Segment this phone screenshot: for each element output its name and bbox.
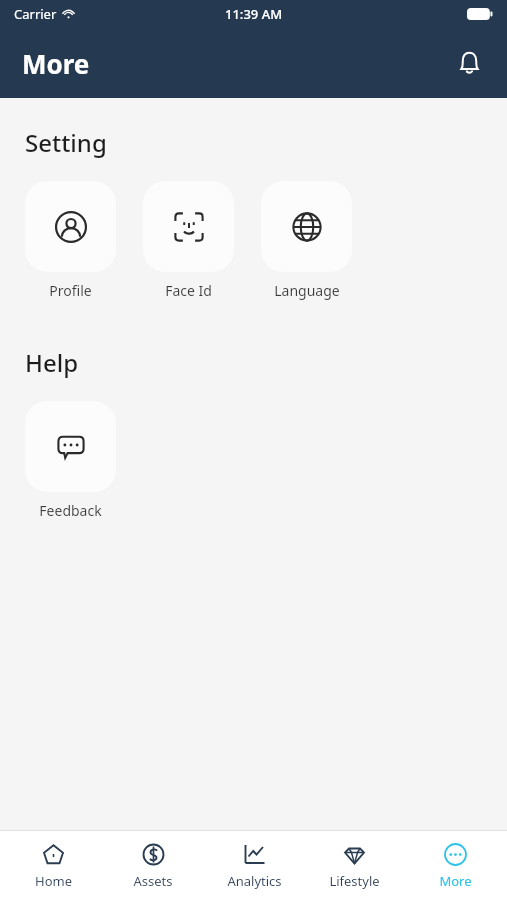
staticText: Setting [25, 126, 107, 159]
staticText: 11:39 AM [225, 5, 283, 23]
staticText: More [22, 46, 90, 81]
staticText: More [439, 872, 472, 890]
button[interactable]: Face Id [143, 181, 234, 300]
staticText: Lifestyle [329, 872, 380, 890]
staticText: Help [25, 346, 79, 379]
staticText: Language [274, 281, 340, 300]
staticText: Feedback [39, 501, 102, 520]
button[interactable]: Home [5, 836, 101, 896]
staticText: Profile [49, 281, 92, 300]
button[interactable]: Profile [25, 181, 116, 300]
button[interactable]: Notifications [445, 39, 493, 87]
button[interactable]: More [407, 836, 503, 896]
button[interactable]: Language [261, 181, 352, 300]
staticText: Assets [133, 872, 173, 890]
button[interactable]: Analytics [206, 836, 302, 896]
staticText: Carrier [14, 5, 57, 23]
button[interactable]: Feedback [25, 401, 116, 520]
staticText: Analytics [227, 872, 282, 890]
button[interactable]: Assets [105, 836, 201, 896]
staticText: Face Id [165, 281, 212, 300]
staticText: Home [35, 872, 72, 890]
button[interactable]: Lifestyle [306, 836, 402, 896]
